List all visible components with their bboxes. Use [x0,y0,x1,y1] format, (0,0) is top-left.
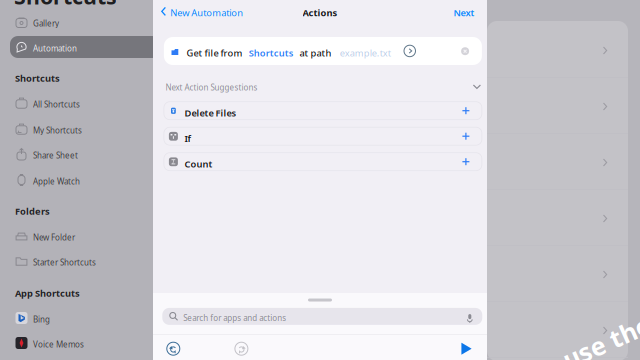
button[interactable]: Open [598,210,612,227]
button[interactable]: Starter Shortcuts [10,250,160,272]
button[interactable]: Count [164,153,482,171]
staticText: Gallery [33,18,59,29]
staticText: Get file from [186,47,242,59]
staticText: Folders [15,205,50,217]
button[interactable]: Open [598,266,612,283]
staticText: App Shortcuts [15,287,80,299]
button[interactable]: Run [455,337,478,360]
staticText: All Shortcuts [33,99,80,110]
staticText: New Folder [33,232,75,243]
button[interactable]: Undo [161,336,186,360]
staticText: Bing [33,314,50,325]
button[interactable]: Delete Files [164,102,482,120]
button[interactable]: Gallery [10,11,160,33]
staticText: New Automation [170,6,243,19]
button[interactable]: Automation [10,36,160,58]
button[interactable]: Open [598,154,612,171]
button[interactable]: Open [598,98,612,115]
button[interactable]: Open [598,42,612,59]
staticText: Delete Files [185,107,237,119]
button[interactable]: Apple Watch [10,169,160,191]
staticText: If [185,132,191,145]
button[interactable]: Choose variable [400,41,419,61]
staticText: My Shortcuts [33,125,82,136]
button[interactable]: Next [441,1,481,21]
button[interactable]: Clear [457,43,473,59]
staticText: Shortcuts [15,72,60,84]
staticText: Automation [33,43,77,54]
button[interactable]: Open [598,322,612,339]
staticText: Starter Shortcuts [33,257,96,268]
button[interactable]: Redo [229,336,254,360]
staticText: example.txt [340,47,391,59]
button[interactable]: If [164,127,482,145]
staticText: Next [453,6,474,19]
button[interactable]: New Automation [153,1,253,21]
button[interactable]: Voice Memos [10,332,160,354]
staticText: Actions [303,6,338,19]
staticText: at path [299,47,331,59]
staticText: Shortcuts [14,0,117,10]
staticText: Apple Watch [33,176,80,187]
button[interactable]: My Shortcuts [10,118,160,140]
staticText: use the [560,325,640,359]
button[interactable]: New Folder [10,225,160,247]
staticText: Search for apps and actions [183,312,286,323]
button[interactable]: Bing [10,307,160,329]
staticText: Next Action Suggestions [165,82,257,93]
staticText: Voice Memos [33,339,84,350]
button[interactable]: All Shortcuts [10,92,160,114]
button[interactable]: Share Sheet [10,143,160,165]
button[interactable]: Next Action Suggestions [164,78,482,94]
staticText: Share Sheet [33,150,78,161]
staticText: Shortcuts [249,47,294,59]
staticText: Count [185,158,213,170]
